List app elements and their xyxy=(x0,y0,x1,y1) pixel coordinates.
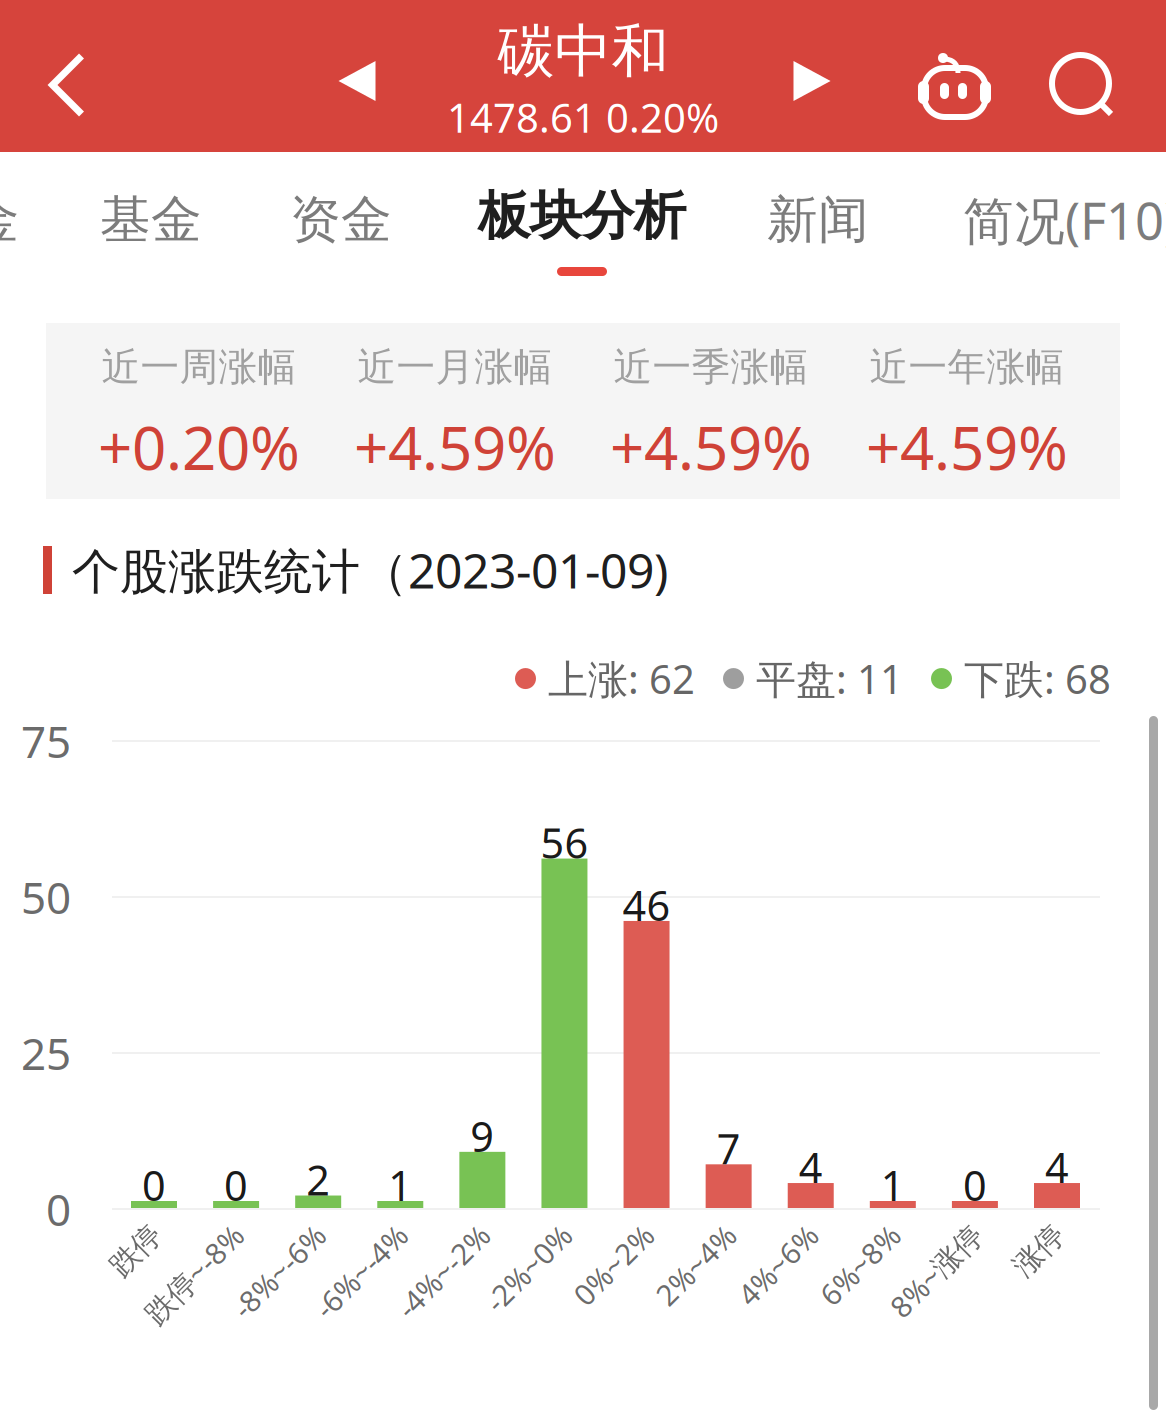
staticText: 1478.61 0.20% xyxy=(447,91,719,144)
staticText: 碳中和 xyxy=(497,16,668,87)
staticText: 9 xyxy=(470,1108,494,1163)
staticText: 2 xyxy=(306,1152,330,1207)
staticText: 0 xyxy=(224,1158,248,1212)
staticText: 下跌: 68 xyxy=(964,652,1111,705)
staticText: 46 xyxy=(622,877,670,932)
staticText: 0%~2% xyxy=(549,1210,648,1249)
staticText: 4 xyxy=(1045,1140,1069,1194)
staticText: 50 xyxy=(21,868,71,926)
button[interactable]: 板块分析 xyxy=(462,165,702,299)
button[interactable]: Back xyxy=(15,0,119,152)
button[interactable]: 金 xyxy=(0,165,24,275)
staticText: 4%~6% xyxy=(714,1210,813,1249)
staticText: -6%~-4% xyxy=(285,1210,402,1249)
button[interactable]: Assistant xyxy=(902,51,1012,203)
staticText: 近一季涨幅 xyxy=(613,343,808,391)
staticText: 跌停 xyxy=(98,1212,156,1248)
staticText: 7 xyxy=(717,1121,741,1176)
staticText: 25 xyxy=(21,1024,71,1082)
staticText: 资金 xyxy=(290,189,392,251)
staticText: 个股涨跌统计（2023-01-09) xyxy=(72,538,668,602)
staticText: -2%~0% xyxy=(458,1210,566,1249)
button[interactable]: 资金 xyxy=(286,165,396,275)
staticText: 新闻 xyxy=(767,189,869,251)
button[interactable]: Search xyxy=(1031,55,1135,207)
staticText: 简况(F10) xyxy=(963,186,1166,254)
staticText: 近一月涨幅 xyxy=(357,343,552,391)
staticText: 6%~8% xyxy=(796,1210,895,1249)
staticText: 跌停~-8% xyxy=(113,1210,238,1249)
button[interactable]: 简况(F10) xyxy=(963,165,1166,275)
button[interactable]: 新闻 xyxy=(763,165,873,275)
staticText: 近一年涨幅 xyxy=(869,343,1064,391)
staticText: +4.59% xyxy=(354,407,556,487)
staticText: 4 xyxy=(799,1140,823,1194)
staticText: 金 xyxy=(0,189,19,251)
button[interactable]: 基金 xyxy=(96,165,206,275)
button[interactable]: Previous sector xyxy=(311,0,403,152)
staticText: 板块分析 xyxy=(478,184,686,248)
staticText: +0.20% xyxy=(98,407,300,487)
staticText: 75 xyxy=(21,712,71,770)
staticText: +4.59% xyxy=(610,407,812,487)
staticText: 近一周涨幅 xyxy=(101,343,296,391)
staticText: 0 xyxy=(46,1180,71,1238)
staticText: 1 xyxy=(881,1158,905,1212)
staticText: 平盘: 11 xyxy=(756,652,903,705)
button[interactable]: Next sector xyxy=(766,0,858,152)
staticText: 2%~4% xyxy=(632,1210,731,1249)
staticText: 0 xyxy=(142,1158,166,1212)
staticText: 0 xyxy=(963,1158,987,1212)
staticText: 涨停 xyxy=(1001,1212,1059,1248)
staticText: 上涨: 62 xyxy=(548,652,695,705)
staticText: 8%~涨停 xyxy=(861,1210,977,1249)
staticText: 56 xyxy=(540,815,588,870)
staticText: +4.59% xyxy=(866,407,1068,487)
staticText: 1 xyxy=(388,1158,412,1212)
staticText: -8%~-6% xyxy=(203,1210,320,1249)
staticText: 基金 xyxy=(100,189,202,251)
staticText: -4%~-2% xyxy=(367,1210,484,1249)
